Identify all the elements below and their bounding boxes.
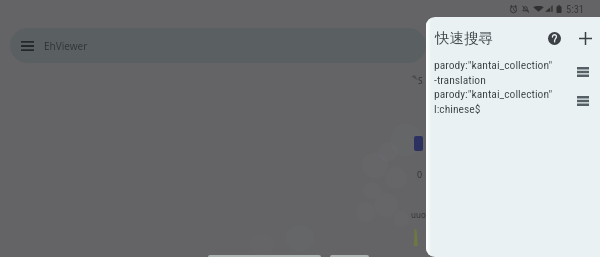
staticText: 5:31 — [566, 3, 585, 15]
button[interactable]: Reorder — [570, 59, 596, 85]
staticText: 0 — [417, 168, 423, 180]
button[interactable]: parody:"kantai_collection" l:chinese$ — [426, 86, 600, 115]
staticText: EhViewer — [44, 39, 88, 53]
button[interactable]: Open navigation menu — [10, 28, 426, 63]
staticText: uuo — [411, 209, 426, 220]
button[interactable]: parody:"kantai_collection" -translation — [426, 57, 600, 86]
staticText: parody:"kantai_collection" l:chinese$ — [434, 87, 570, 115]
button[interactable]: Add quick search — [571, 24, 599, 52]
staticText: parody:"kantai_collection" -translation — [434, 58, 570, 86]
button[interactable]: Reorder — [570, 88, 596, 114]
button[interactable]: Open navigation menu — [18, 37, 36, 55]
button[interactable]: Help — [540, 24, 568, 52]
staticText: S — [418, 75, 423, 87]
staticText: 快速搜尋 — [435, 29, 493, 47]
